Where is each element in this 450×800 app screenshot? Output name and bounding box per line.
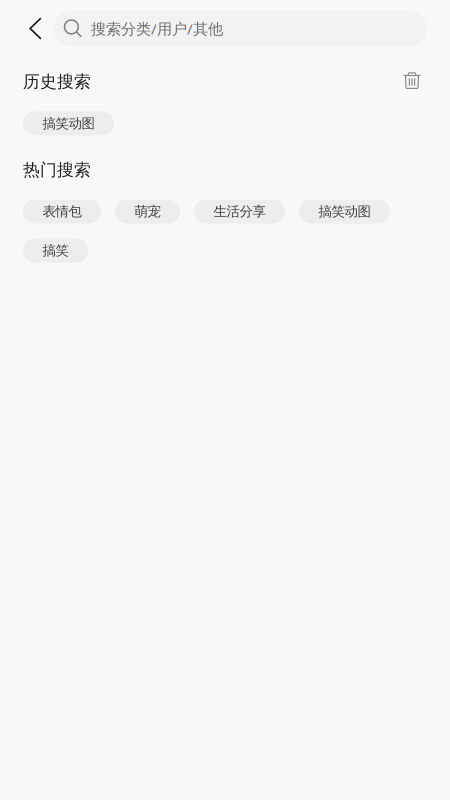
staticText: 表情包 <box>42 203 81 220</box>
button[interactable]: 萌宠 <box>115 200 180 224</box>
staticText: 搞笑 <box>42 242 68 259</box>
button[interactable]: Clear search history <box>398 68 426 95</box>
staticText: 萌宠 <box>134 203 160 220</box>
staticText: 搞笑动图 <box>42 115 94 132</box>
staticText: 生活分享 <box>213 203 265 220</box>
button[interactable]: 搜索分类/用户/其他 <box>53 11 427 46</box>
staticText: 热门搜索 <box>23 159 91 181</box>
button[interactable]: 搞笑 <box>23 239 88 263</box>
staticText: 搞笑动图 <box>318 203 370 220</box>
button[interactable]: 搞笑动图 <box>23 111 114 135</box>
staticText: 历史搜索 <box>23 71 91 92</box>
button[interactable]: 生活分享 <box>194 200 285 224</box>
button[interactable]: 搞笑动图 <box>299 200 390 224</box>
button[interactable]: Back <box>0 11 53 45</box>
staticText: 搜索分类/用户/其他 <box>91 18 223 39</box>
button[interactable]: 表情包 <box>23 200 101 224</box>
